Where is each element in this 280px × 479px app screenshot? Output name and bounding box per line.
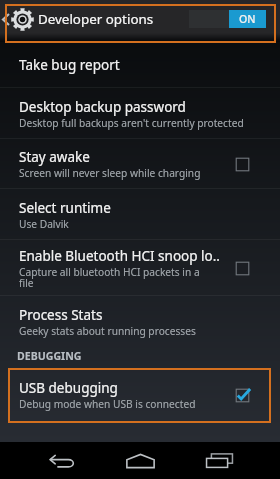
button[interactable]: Navigate up: [0, 0, 11, 38]
staticText: Process Stats: [19, 306, 103, 324]
staticText: DEBUGGING: [17, 349, 82, 363]
staticText: Screen will never sleep while charging: [19, 166, 201, 180]
button[interactable]: Take bug report: [0, 42, 280, 88]
staticText: Enable Bluetooth HCI snoop lo..: [19, 247, 220, 265]
button[interactable]: Back: [34, 442, 90, 479]
staticText: Take bug report: [19, 56, 120, 74]
button[interactable]: Enable Bluetooth HCI snoop lo..: [0, 240, 280, 296]
staticText: Developer options: [38, 10, 154, 28]
staticText: Geeky stats about running processes: [19, 324, 196, 338]
staticText: ON: [239, 12, 256, 26]
staticText: Capture all bluetooth HCI packets in a f…: [19, 265, 200, 290]
staticText: Desktop backup password: [19, 98, 186, 116]
staticText: USB debugging: [19, 379, 118, 397]
button[interactable]: Desktop backup password: [0, 88, 280, 139]
staticText: Stay awake: [19, 148, 90, 166]
button[interactable]: Process Stats: [0, 296, 280, 348]
staticText: Debug mode when USB is connected: [19, 397, 196, 411]
staticText: Use Dalvik: [19, 217, 69, 231]
button[interactable]: Home: [112, 442, 168, 479]
button[interactable]: USB debugging: [0, 371, 280, 419]
button[interactable]: Stay awake: [0, 139, 280, 189]
button[interactable]: Select runtime: [0, 189, 280, 240]
staticText: Desktop full backups aren't currently pr…: [19, 116, 244, 130]
staticText: Select runtime: [19, 199, 111, 217]
button[interactable]: Recent apps: [191, 442, 247, 479]
button[interactable]: Developer options on: [189, 10, 266, 28]
